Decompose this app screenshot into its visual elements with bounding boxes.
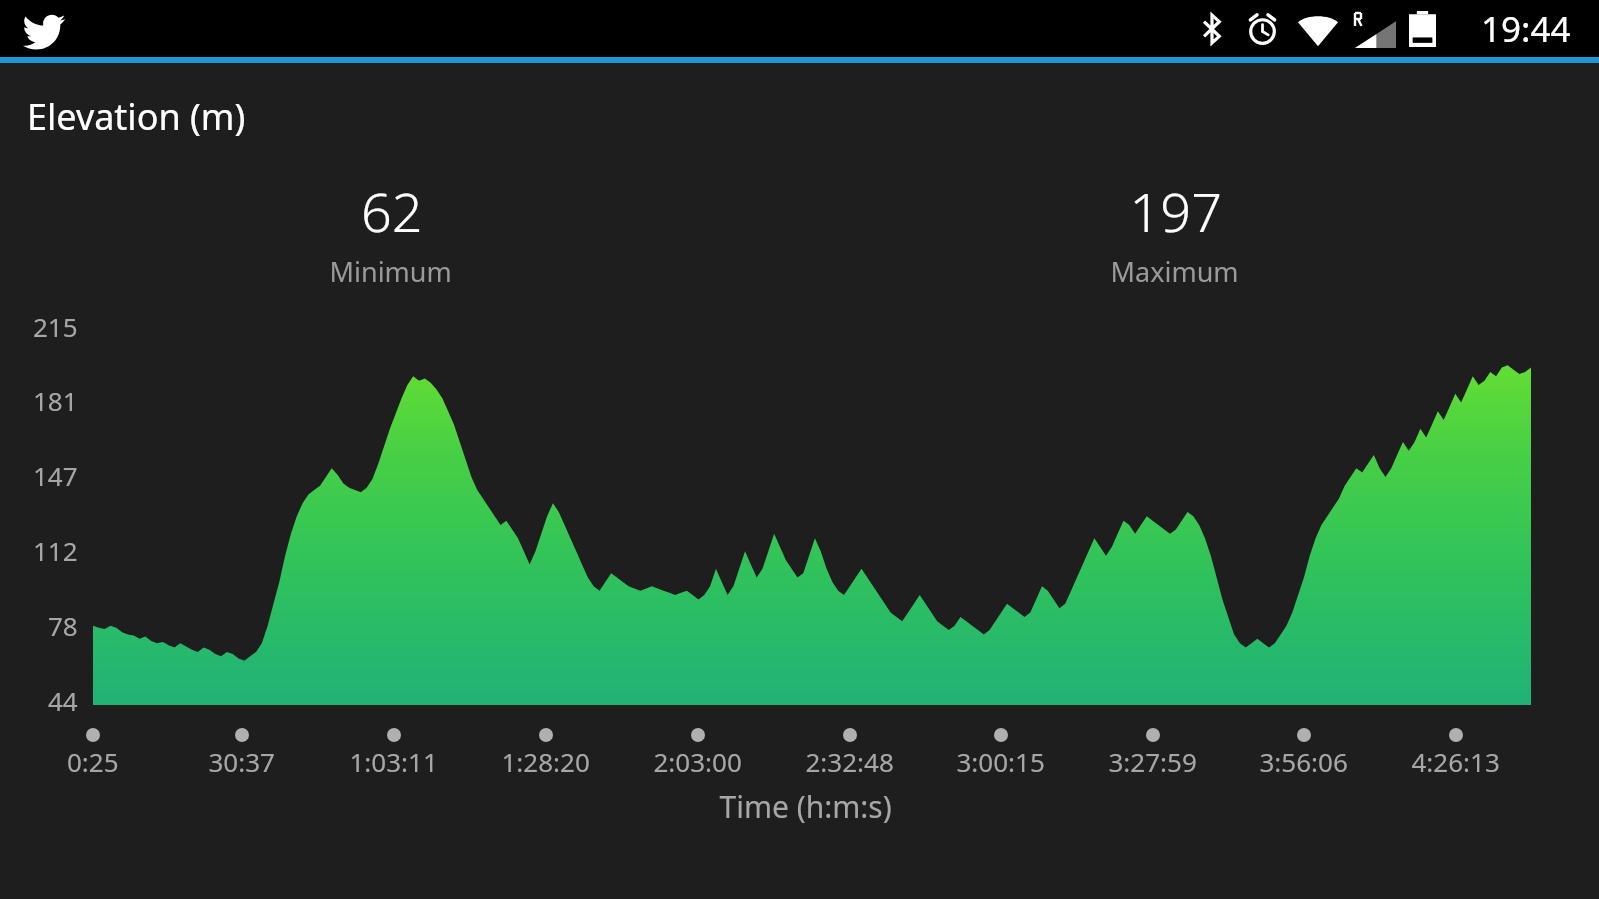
other: Elevation chart [0,0,1599,899]
button[interactable]: Elevation chart [0,0,1599,899]
